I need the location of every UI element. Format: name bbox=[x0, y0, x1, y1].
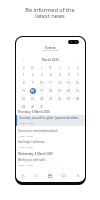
staticText: 17 bbox=[40, 89, 44, 93]
button[interactable]: 25 bbox=[48, 96, 54, 102]
button[interactable]: Next month bbox=[75, 58, 80, 63]
staticText: T bbox=[59, 66, 61, 70]
button[interactable]: 21 bbox=[75, 88, 81, 94]
button[interactable]: 29 bbox=[21, 104, 27, 110]
button[interactable]: 13 bbox=[66, 80, 72, 86]
button[interactable]: 14 bbox=[75, 80, 81, 86]
staticText: 6 bbox=[68, 73, 70, 77]
button[interactable]: Our team, around the globe - Japanese br… bbox=[16, 115, 85, 126]
staticText: F bbox=[68, 66, 70, 70]
button[interactable]: 20 bbox=[66, 88, 72, 94]
button[interactable]: 5 bbox=[57, 72, 63, 78]
staticText: W bbox=[49, 66, 52, 70]
button[interactable]: Weekly sync with sales bbox=[16, 158, 85, 166]
button[interactable]: 1 bbox=[21, 72, 27, 78]
staticText: 30 bbox=[31, 105, 35, 109]
button[interactable]: 23 bbox=[30, 96, 36, 102]
staticText: 29 bbox=[22, 105, 26, 109]
staticText: 12 bbox=[58, 81, 62, 85]
staticText: 24 bbox=[40, 97, 44, 101]
staticText: 22 bbox=[22, 97, 26, 101]
staticText: S bbox=[23, 66, 25, 70]
staticText: 19 bbox=[58, 89, 62, 93]
button[interactable]: Search bbox=[29, 170, 43, 181]
staticText: 5 bbox=[59, 73, 61, 77]
button[interactable]: 27 bbox=[66, 96, 72, 102]
staticText: 12:00 - 13:00 bbox=[19, 121, 34, 124]
button[interactable]: 10 bbox=[39, 80, 45, 86]
staticText: S bbox=[77, 66, 79, 70]
staticText: Weekly sync with sales bbox=[18, 158, 46, 162]
button[interactable]: 28 bbox=[75, 96, 81, 102]
staticText: Be informed of the latest news bbox=[25, 6, 75, 20]
staticText: Thursday, 5 March 2020 bbox=[18, 110, 50, 114]
staticText: 13:00 - 14:00 bbox=[18, 163, 33, 166]
staticText: 23 bbox=[31, 97, 35, 101]
button[interactable]: 6 bbox=[66, 72, 72, 78]
staticText: 25 bbox=[49, 97, 53, 101]
button[interactable]: 16 bbox=[30, 88, 36, 94]
button[interactable]: Home bbox=[16, 170, 29, 181]
staticText: 26 bbox=[58, 97, 62, 101]
staticText: 10 bbox=[40, 81, 44, 85]
staticText: 21 bbox=[76, 89, 80, 93]
staticText: 5 March 2020 bbox=[43, 48, 59, 51]
button[interactable]: 3 bbox=[39, 72, 45, 78]
button[interactable]: Previous month bbox=[21, 58, 26, 63]
button[interactable]: 7 bbox=[75, 72, 81, 78]
button[interactable]: 30 bbox=[30, 104, 36, 110]
staticText: March 2020 bbox=[42, 58, 59, 62]
staticText: San Diego Conference bbox=[18, 140, 45, 144]
button[interactable]: 22 bbox=[21, 96, 27, 102]
staticText: T bbox=[41, 66, 43, 70]
staticText: 15 bbox=[22, 89, 26, 93]
staticText: 7 bbox=[77, 73, 79, 77]
button[interactable]: 4 bbox=[48, 72, 54, 78]
button[interactable]: 15 bbox=[21, 88, 27, 94]
staticText: 4 bbox=[50, 73, 52, 77]
staticText: M bbox=[31, 66, 34, 70]
button[interactable]: 12 bbox=[57, 80, 63, 86]
button[interactable]: 2 bbox=[30, 72, 36, 78]
button[interactable]: Discuss our new broadcast block bbox=[16, 129, 85, 137]
staticText: 17:00 - 18:00 bbox=[18, 145, 33, 148]
staticText: 14:00 - 15:00 bbox=[18, 134, 33, 137]
button[interactable]: 26 bbox=[57, 96, 63, 102]
button[interactable]: 8 bbox=[21, 80, 27, 86]
button[interactable]: 24 bbox=[39, 96, 45, 102]
staticText: Discuss our new broadcast block bbox=[18, 129, 58, 133]
button[interactable]: 31 bbox=[39, 104, 45, 110]
staticText: Events bbox=[45, 45, 56, 50]
button[interactable]: Events bbox=[43, 170, 57, 181]
staticText: Our team, around the globe - Japanese br… bbox=[19, 116, 79, 120]
button[interactable]: San Diego Conference bbox=[16, 140, 85, 148]
staticText: 16 bbox=[31, 89, 35, 93]
button[interactable]: Profile bbox=[71, 170, 85, 181]
staticText: 11 bbox=[49, 81, 53, 85]
staticText: 2 bbox=[32, 73, 34, 77]
staticText: 13 bbox=[67, 81, 71, 85]
staticText: 20 bbox=[67, 89, 71, 93]
button[interactable]: Messages bbox=[57, 170, 71, 181]
staticText: 1 bbox=[23, 73, 25, 77]
staticText: 8 bbox=[23, 81, 25, 85]
button[interactable]: 9 bbox=[30, 80, 36, 86]
staticText: Wednesday, 4 March 2020 bbox=[18, 152, 53, 156]
staticText: 14 bbox=[76, 81, 80, 85]
staticText: 27 bbox=[67, 97, 71, 101]
staticText: 9 bbox=[32, 81, 34, 85]
button[interactable]: 11 bbox=[48, 80, 54, 86]
button[interactable]: 19 bbox=[57, 88, 63, 94]
staticText: 28 bbox=[76, 97, 80, 101]
button[interactable]: 18 bbox=[48, 88, 54, 94]
staticText: 31 bbox=[40, 105, 44, 109]
staticText: 18 bbox=[49, 89, 53, 93]
staticText: 3 bbox=[41, 73, 43, 77]
button[interactable]: 17 bbox=[39, 88, 45, 94]
